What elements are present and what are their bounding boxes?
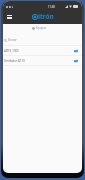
- staticText: 11:38: [48, 5, 55, 9]
- button[interactable]: Menu: [7, 15, 12, 19]
- staticText: AZR 9_1900: [4, 49, 19, 53]
- button[interactable]: Ventilador AZ 10: [3, 56, 82, 66]
- other: Download: [74, 49, 78, 53]
- other: Download: [74, 59, 78, 63]
- button[interactable]: itrón: [32, 12, 54, 21]
- staticText: Buscar: [8, 38, 17, 42]
- staticText: Ventilador AZ 10: [4, 59, 25, 63]
- staticText: Equipos: [36, 26, 47, 30]
- button[interactable]: Equipos: [32, 26, 47, 30]
- button[interactable]: AZR 9_1900: [3, 46, 82, 56]
- staticText: itrón: [38, 12, 54, 21]
